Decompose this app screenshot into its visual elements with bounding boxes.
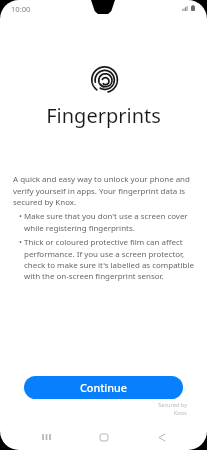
staticText: • <box>19 237 22 248</box>
button[interactable]: Recent apps <box>30 427 62 447</box>
button[interactable]: Back <box>146 427 178 447</box>
staticText: Fingerprints <box>0 102 207 129</box>
button[interactable]: Continue <box>24 376 183 399</box>
staticText: Make sure that you don't use a screen co… <box>24 211 195 233</box>
staticText: 10:00 <box>11 4 31 14</box>
staticText: Secured by Knox <box>0 401 187 416</box>
staticText: Continue <box>80 380 128 395</box>
staticText: A quick and easy way to unlock your phon… <box>13 174 195 207</box>
staticText: • <box>19 211 22 222</box>
button[interactable]: Home <box>88 427 120 447</box>
staticText: Thick or coloured protective film can af… <box>24 237 195 281</box>
